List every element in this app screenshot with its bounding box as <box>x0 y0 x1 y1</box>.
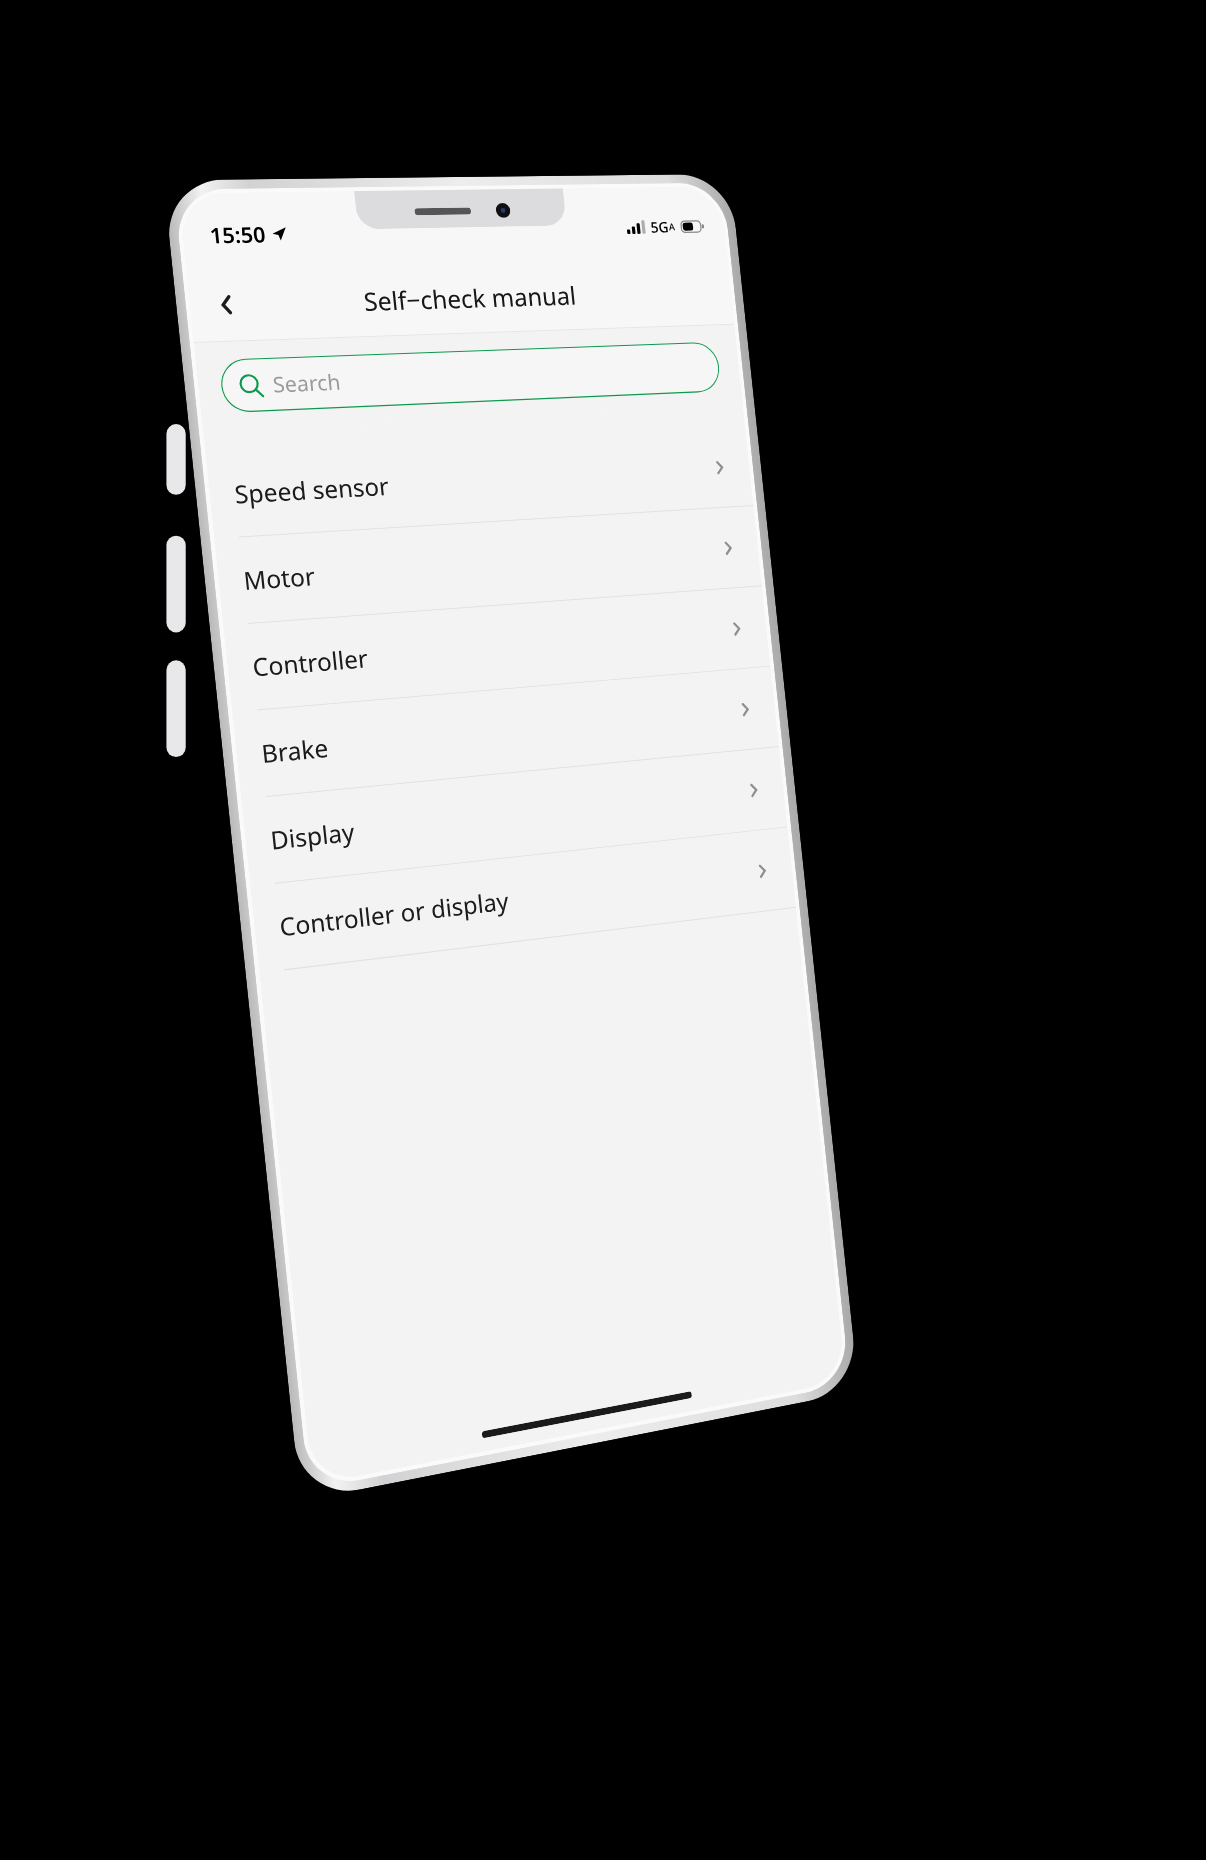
staticText: Speed sensor <box>233 452 711 511</box>
button[interactable]: Speed sensor <box>205 426 753 538</box>
staticText: A <box>668 220 676 233</box>
staticText: Controller <box>251 613 728 684</box>
button[interactable]: Controller <box>223 586 770 712</box>
button[interactable]: Back <box>195 276 257 333</box>
staticText: Self−check manual <box>362 278 578 318</box>
staticText: Brake <box>260 694 737 770</box>
button[interactable]: Motor <box>214 506 762 625</box>
button[interactable]: Display <box>241 747 787 885</box>
staticText: Motor <box>242 532 720 597</box>
staticText: 15:50 <box>208 220 267 251</box>
staticText: Display <box>269 775 746 857</box>
button[interactable]: Controller or display <box>250 827 796 972</box>
button[interactable]: Search <box>219 342 722 413</box>
button[interactable]: Brake <box>232 667 779 798</box>
staticText: Controller or display <box>278 856 754 944</box>
staticText: Search <box>271 367 342 400</box>
staticText: 5G <box>649 217 670 236</box>
